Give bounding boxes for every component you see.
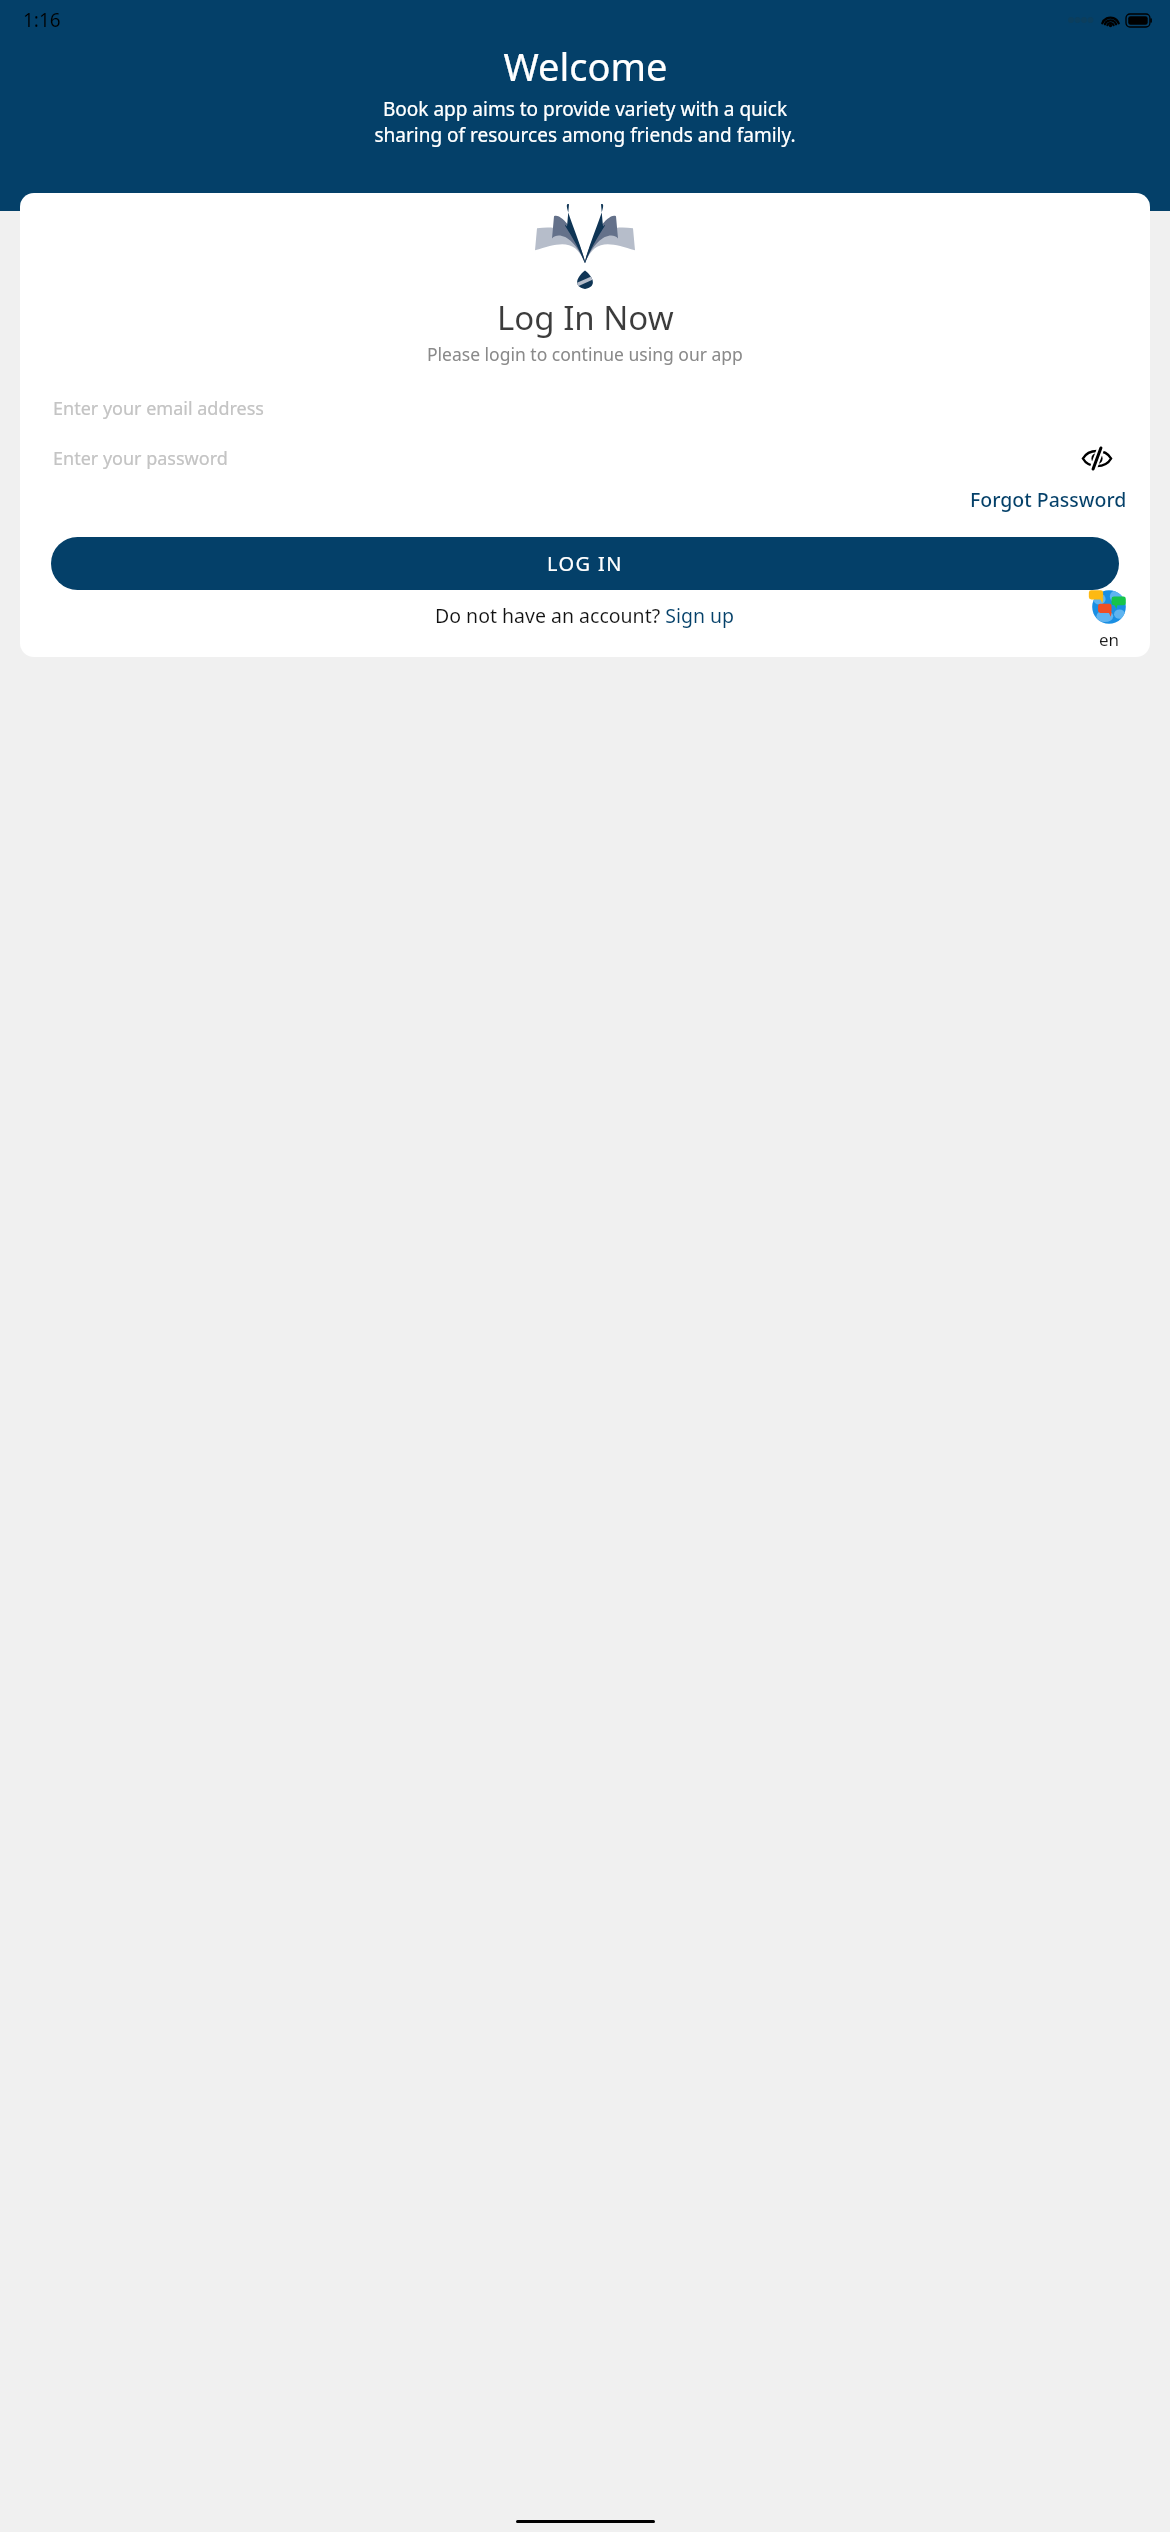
button[interactable]: Language en (1088, 586, 1130, 651)
button[interactable]: Enter your email address (53, 388, 1117, 428)
staticText: Enter your email address (53, 396, 264, 421)
staticText: Forgot Password (970, 486, 1127, 513)
staticText: Book app aims to provide variety with a … (374, 96, 796, 148)
staticText: Log In Now (497, 295, 674, 340)
staticText: Do not have an account? Sign up (435, 602, 735, 629)
button[interactable]: Show password (1077, 438, 1117, 478)
button[interactable]: Enter your password (53, 438, 1077, 478)
staticText: Welcome (503, 40, 668, 92)
staticText: en (1099, 628, 1120, 651)
staticText: 1:16 (23, 7, 61, 33)
button[interactable]: Do not have an account? Sign up (433, 600, 737, 631)
button[interactable]: Forgot Password (966, 482, 1131, 517)
staticText: Enter your password (53, 446, 228, 471)
staticText: Please login to continue using our app (427, 342, 743, 366)
staticText: LOG IN (547, 550, 623, 577)
button[interactable]: LOG IN (51, 537, 1119, 590)
